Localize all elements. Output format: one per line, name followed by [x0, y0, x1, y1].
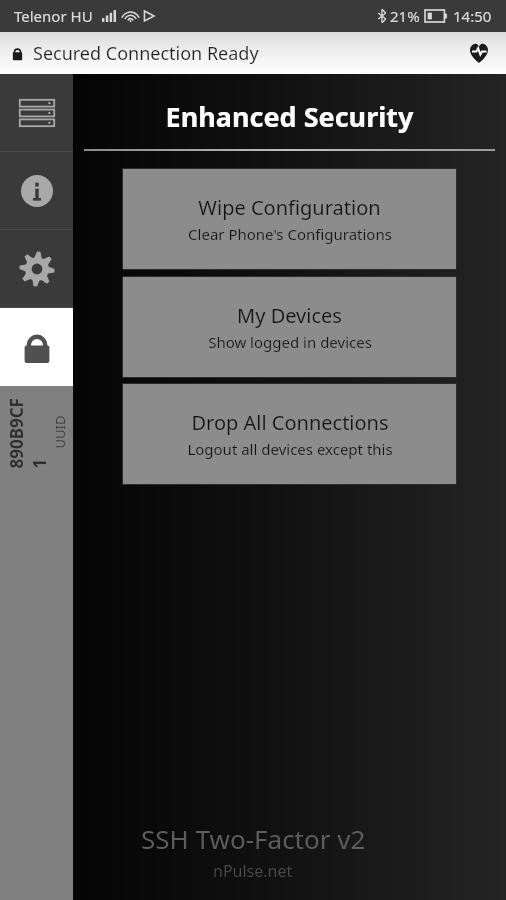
button[interactable]: Drop All Connections — [122, 383, 457, 485]
staticText: nPulse.net — [213, 860, 293, 882]
button[interactable]: Security — [0, 308, 73, 386]
button[interactable]: Pulse status — [462, 36, 496, 70]
staticText: 890B9CF1 — [4, 395, 50, 468]
staticText: Logout all devices except this — [187, 439, 393, 459]
staticText: Telenor HU — [14, 6, 93, 26]
staticText: Secured Connection Ready — [33, 41, 259, 66]
staticText: Wipe Configuration — [198, 194, 381, 221]
staticText: Clear Phone's Configurations — [188, 224, 392, 244]
button[interactable]: Info — [0, 152, 73, 230]
button[interactable]: Settings — [0, 230, 73, 308]
staticText: 14:50 — [453, 6, 492, 26]
button[interactable]: Wipe Configuration — [122, 168, 457, 270]
staticText: UUID — [50, 415, 68, 448]
staticText: Show logged in devices — [208, 332, 372, 352]
button[interactable]: My Devices — [122, 276, 457, 378]
staticText: Drop All Connections — [191, 409, 389, 436]
button[interactable]: Servers — [0, 74, 73, 152]
staticText: 21% — [390, 6, 420, 26]
staticText: SSH Two-Factor v2 — [141, 821, 366, 856]
staticText: My Devices — [237, 302, 342, 329]
staticText: Enhanced Security — [73, 98, 506, 135]
